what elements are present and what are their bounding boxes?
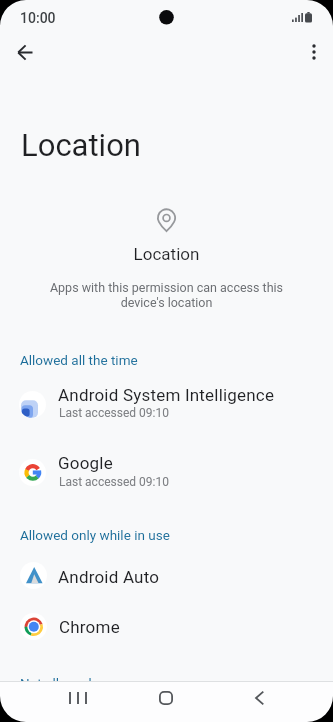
button[interactable] <box>58 681 98 714</box>
staticText: 10:00 <box>20 10 56 26</box>
staticText: Location <box>0 244 333 264</box>
staticText: Google <box>58 453 113 473</box>
staticText: Location <box>21 127 141 163</box>
staticText: Allowed all the time <box>20 352 138 368</box>
button[interactable] <box>7 34 43 70</box>
staticText: Last accessed 09:10 <box>59 475 169 489</box>
staticText: Chrome <box>59 617 120 637</box>
button[interactable]: Google <box>0 448 333 496</box>
button[interactable]: Android Auto <box>0 556 333 596</box>
button[interactable] <box>298 36 330 68</box>
staticText: Allowed only while in use <box>20 527 170 543</box>
staticText: Not allowed <box>20 675 92 691</box>
button[interactable] <box>239 681 279 714</box>
staticText: Android Auto <box>58 567 160 587</box>
staticText: Last accessed 09:10 <box>59 406 169 420</box>
staticText: Apps with this permission can access thi… <box>0 280 333 310</box>
button[interactable]: Android System Intelligence <box>0 380 333 428</box>
button[interactable] <box>146 681 186 714</box>
staticText: Android System Intelligence <box>58 385 275 405</box>
button[interactable]: Chrome <box>0 606 333 646</box>
